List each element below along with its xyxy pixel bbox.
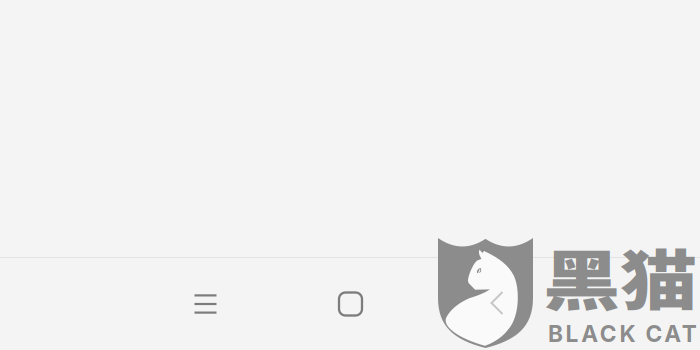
staticText: BLACK CAT <box>548 320 697 347</box>
button[interactable]: Home <box>278 258 423 350</box>
button[interactable]: Back <box>423 258 568 350</box>
button[interactable]: Recent apps <box>133 258 278 350</box>
staticText: 黑猫 <box>543 229 697 341</box>
